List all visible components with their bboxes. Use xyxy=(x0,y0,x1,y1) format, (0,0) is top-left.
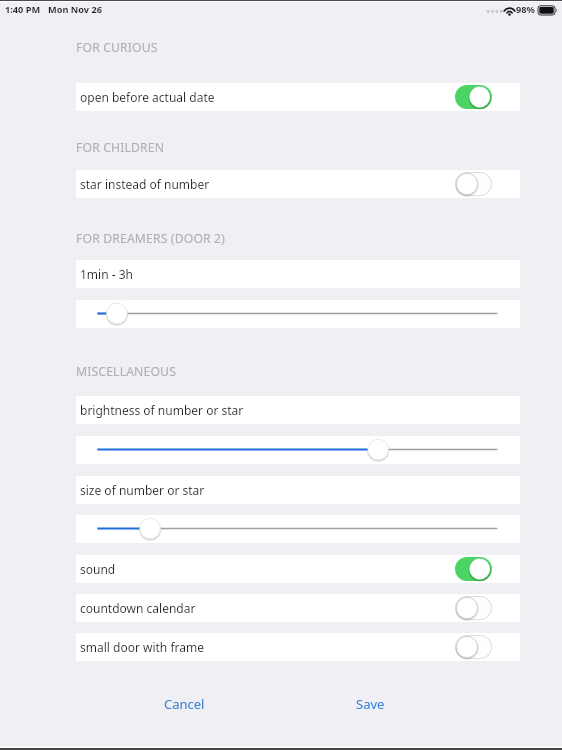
button[interactable]: 1min - 3h xyxy=(76,260,520,288)
staticText: FOR CHILDREN xyxy=(76,139,165,156)
staticText: brightness of number or star xyxy=(80,402,244,418)
staticText: open before actual date xyxy=(80,89,215,105)
button[interactable]: sound xyxy=(76,555,520,583)
staticText: star instead of number xyxy=(80,176,210,192)
button[interactable]: Save xyxy=(340,687,401,721)
button[interactable]: open before actual date toggle xyxy=(455,85,492,109)
staticText: Cancel xyxy=(164,695,205,713)
button[interactable]: star instead of number xyxy=(76,170,520,198)
staticText: size of number or star xyxy=(80,482,205,498)
button[interactable]: star instead of number toggle xyxy=(455,172,492,196)
button[interactable]: Cancel xyxy=(148,687,221,721)
button[interactable]: small door with frame toggle xyxy=(455,635,492,659)
button[interactable]: small door with frame xyxy=(76,633,520,661)
button[interactable]: brightness of number or star xyxy=(76,396,520,424)
button[interactable]: size of number or star xyxy=(76,476,520,504)
button[interactable]: open before actual date xyxy=(76,83,520,111)
staticText: countdown calendar xyxy=(80,600,196,616)
button[interactable]: brightness slider xyxy=(76,436,520,464)
staticText: FOR DREAMERS (DOOR 2) xyxy=(76,230,226,247)
staticText: MISCELLANEOUS xyxy=(76,363,177,380)
button[interactable]: countdown calendar toggle xyxy=(455,596,492,620)
button[interactable]: duration slider xyxy=(76,300,520,328)
staticText: small door with frame xyxy=(80,639,204,655)
staticText: 1:40 PM xyxy=(5,3,41,16)
staticText: 98% xyxy=(516,3,535,16)
button[interactable]: countdown calendar xyxy=(76,594,520,622)
button[interactable]: sound toggle xyxy=(455,557,492,581)
staticText: sound xyxy=(80,561,116,577)
staticText: FOR CURIOUS xyxy=(76,39,158,56)
staticText: Save xyxy=(356,695,385,713)
button[interactable]: size slider xyxy=(76,515,520,543)
staticText: Mon Nov 26 xyxy=(48,3,102,16)
staticText: 1min - 3h xyxy=(80,266,133,282)
